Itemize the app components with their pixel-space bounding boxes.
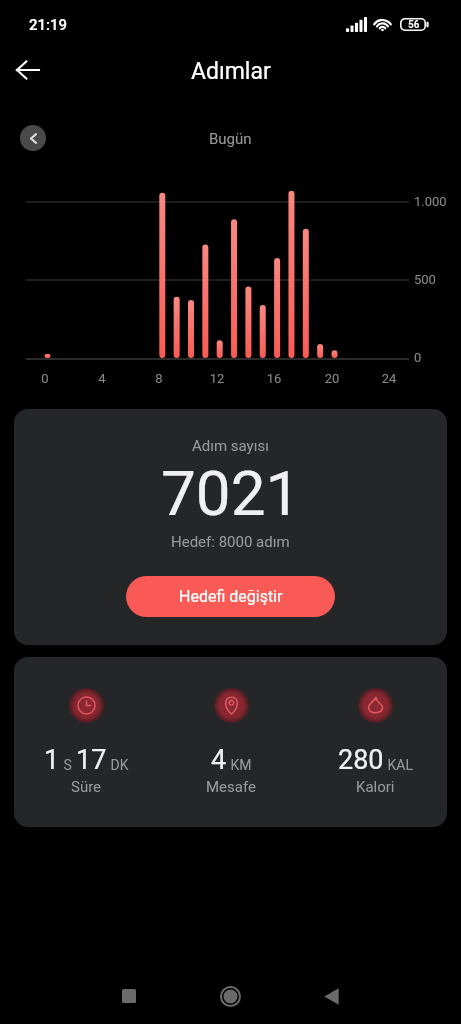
button[interactable]: Previous day [11,116,55,160]
staticText: KAL [384,757,413,773]
staticText: 7021 [161,457,301,530]
staticText: DK [107,757,129,773]
staticText: 8 [144,371,174,386]
staticText: Mesafe [206,778,256,796]
staticText: 0 [414,350,422,365]
staticText: 0 [30,371,60,386]
staticText: 17 [76,744,107,776]
staticText: 4 [87,371,117,386]
button[interactable]: Home [202,968,258,1024]
button[interactable]: Recents [101,968,157,1024]
staticText: Bugün [209,130,252,148]
staticText: Hedefi değiştir [179,587,283,606]
button[interactable]: Hedefi değiştir [126,576,335,617]
button[interactable]: 280 [303,657,447,827]
staticText: 500 [414,272,436,287]
staticText: 21:19 [29,16,68,34]
staticText: S [60,757,76,773]
staticText: 56 [408,19,420,31]
button[interactable]: 1 [14,657,159,827]
staticText: 20 [317,371,347,386]
staticText: 1.000 [414,194,447,209]
staticText: Adım sayısı [192,437,269,455]
staticText: 4 [211,744,227,776]
button[interactable]: Back [5,48,49,92]
staticText: Adımlar [191,58,271,85]
staticText: Hedef: 8000 adım [171,533,290,551]
button[interactable]: 4 [159,657,303,827]
staticText: 24 [374,371,404,386]
staticText: 280 [338,744,384,776]
staticText: Kalori [356,778,395,796]
staticText: KM [227,757,252,773]
button[interactable]: Back [303,968,359,1024]
staticText: Süre [71,778,102,796]
staticText: 1 [44,744,60,776]
staticText: 12 [202,371,232,386]
staticText: 16 [259,371,289,386]
